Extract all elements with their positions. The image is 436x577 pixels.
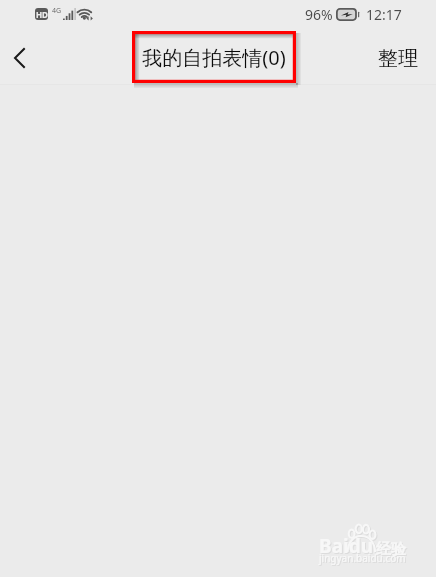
staticText: 经验 [376, 540, 406, 559]
staticText: Baidu [319, 533, 374, 559]
button[interactable]: Back [0, 28, 46, 84]
staticText: 整理 [378, 46, 418, 71]
staticText: Baidu [320, 534, 375, 560]
staticText: 我的自拍表情(0) [142, 44, 286, 71]
staticText: 4G [52, 6, 62, 16]
staticText: HD [36, 9, 48, 20]
staticText: jingyan.baidu.com [319, 551, 406, 565]
staticText: 12:17 [366, 5, 402, 24]
button[interactable]: 整理 [358, 32, 436, 85]
staticText: 经验 [377, 541, 407, 560]
button[interactable]: 我的自拍表情(0) [131, 30, 303, 90]
staticText: 96% [305, 5, 333, 24]
staticText: jingyan.baidu.com [320, 552, 407, 566]
